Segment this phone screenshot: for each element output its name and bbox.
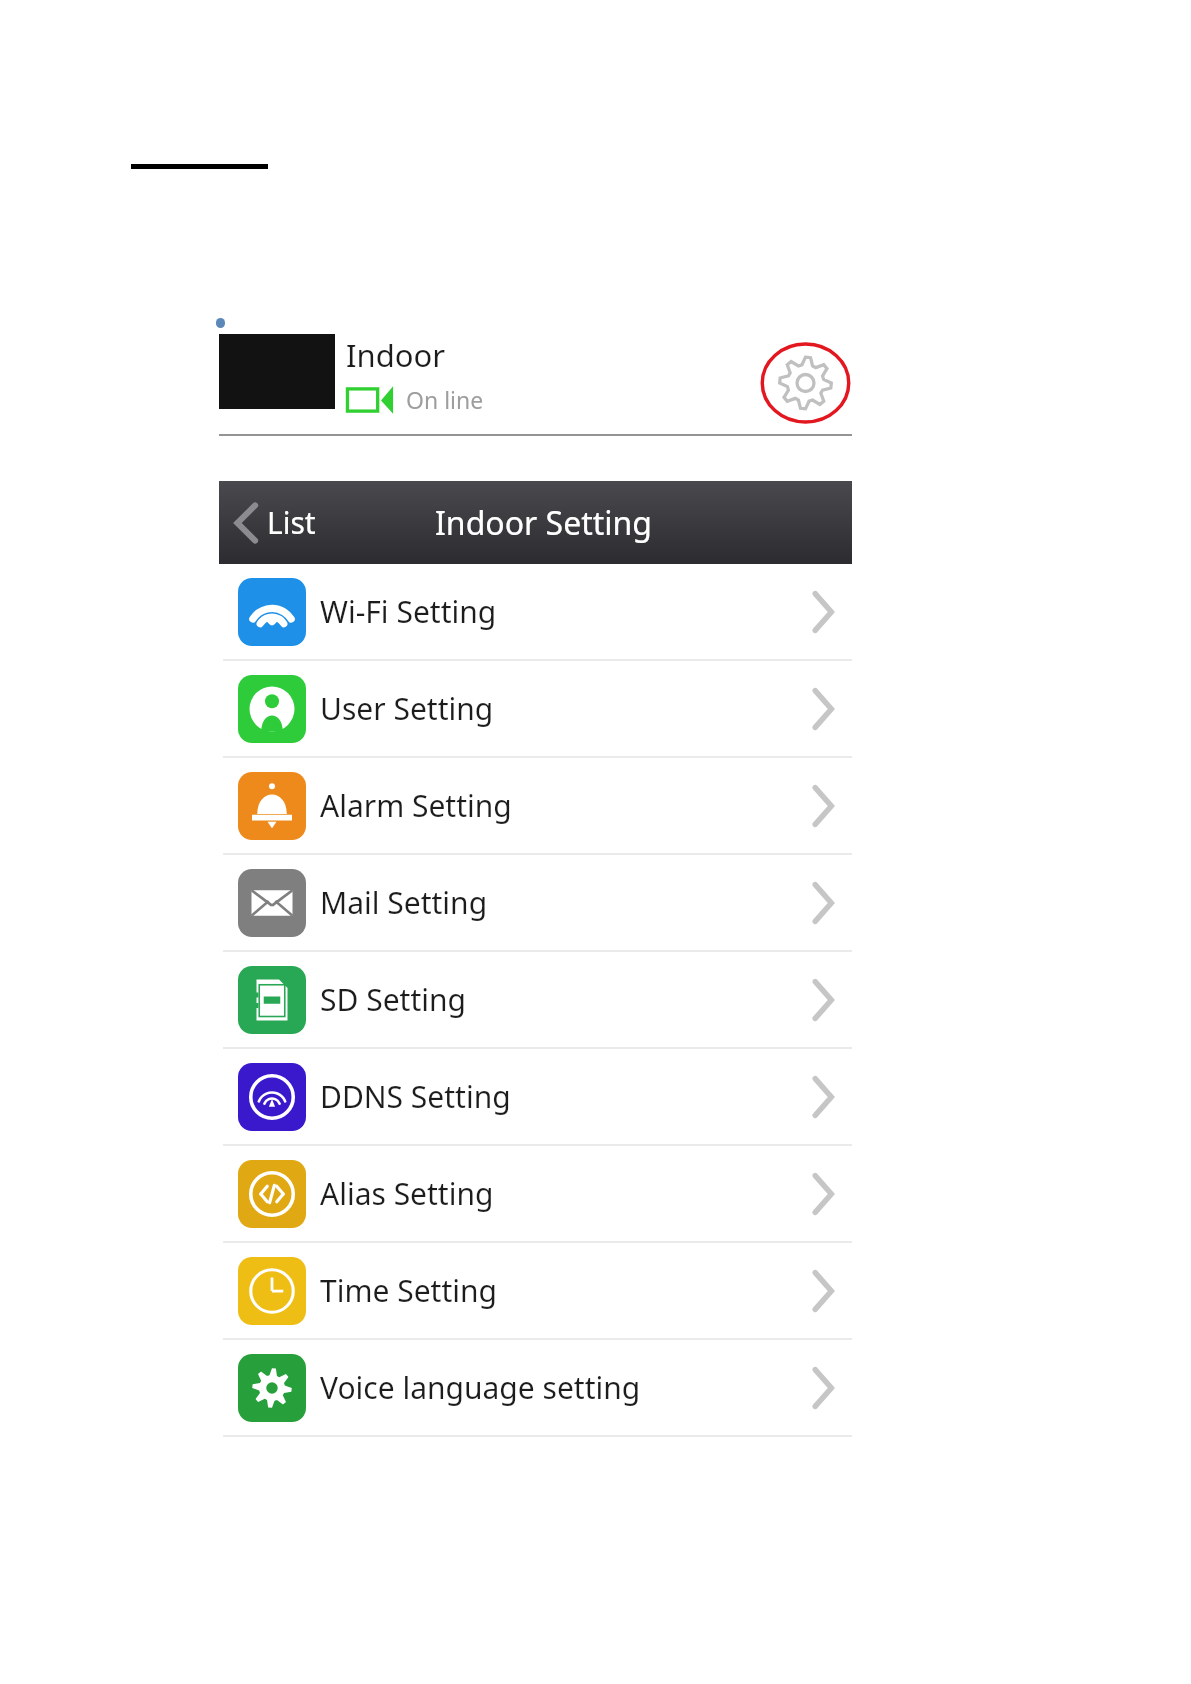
staticText: Time Setting	[320, 1270, 810, 1311]
button[interactable]: Settings	[759, 342, 852, 424]
staticText: User Setting	[320, 688, 810, 729]
button[interactable]: Alias Setting	[219, 1146, 852, 1241]
staticText: Indoor	[346, 334, 446, 376]
staticText: Alarm Setting	[320, 785, 810, 826]
button[interactable]: Voice language setting	[219, 1340, 852, 1435]
button[interactable]: SD Setting	[219, 952, 852, 1047]
staticText: Voice language setting	[320, 1367, 810, 1408]
staticText: Indoor Setting	[435, 501, 652, 545]
staticText: Wi-Fi Setting	[320, 591, 810, 632]
staticText: On line	[406, 384, 484, 415]
staticText: DDNS Setting	[320, 1076, 810, 1117]
button[interactable]: Mail Setting	[219, 855, 852, 950]
button[interactable]: DDNS Setting	[219, 1049, 852, 1144]
button[interactable]: User Setting	[219, 661, 852, 756]
button[interactable]: Time Setting	[219, 1243, 852, 1338]
staticText: SD Setting	[320, 979, 810, 1020]
button[interactable]: List	[234, 481, 316, 564]
button[interactable]: Wi-Fi Setting	[219, 564, 852, 659]
staticText: List	[267, 502, 316, 543]
button[interactable]: Alarm Setting	[219, 758, 852, 853]
staticText: Alias Setting	[320, 1173, 810, 1214]
staticText: Mail Setting	[320, 882, 810, 923]
